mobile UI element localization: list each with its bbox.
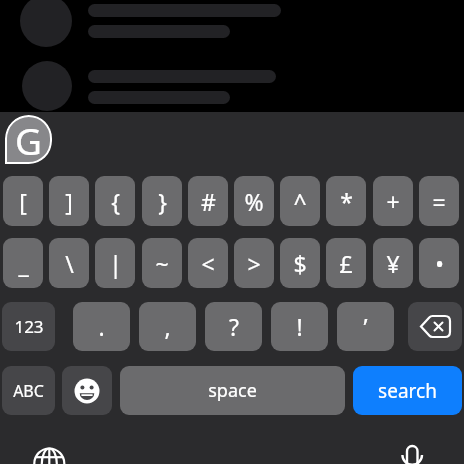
- button[interactable]: ABC: [2, 366, 55, 415]
- staticText: ~: [155, 248, 169, 279]
- button[interactable]: +: [373, 176, 413, 226]
- button[interactable]: space: [120, 366, 345, 415]
- button[interactable]: ]: [49, 176, 89, 226]
- staticText: |: [109, 248, 122, 279]
- button[interactable]: .: [73, 302, 130, 351]
- button[interactable]: ,: [139, 302, 196, 351]
- button[interactable]: [408, 302, 462, 351]
- staticText: _: [18, 248, 29, 279]
- button[interactable]: #: [188, 176, 228, 226]
- staticText: G: [15, 115, 42, 164]
- staticText: ABC: [13, 380, 44, 402]
- button[interactable]: •: [419, 238, 459, 288]
- staticText: $: [293, 248, 307, 279]
- button[interactable]: [33, 446, 66, 464]
- staticText: #: [201, 186, 216, 217]
- button[interactable]: |: [95, 238, 135, 288]
- staticText: <: [201, 248, 215, 279]
- button[interactable]: ¥: [373, 238, 413, 288]
- staticText: ?: [229, 311, 239, 342]
- button[interactable]: 123: [2, 302, 55, 351]
- button[interactable]: =: [419, 176, 459, 226]
- staticText: space: [208, 378, 257, 403]
- staticText: +: [386, 186, 400, 217]
- staticText: >: [247, 248, 261, 279]
- button[interactable]: [: [3, 176, 43, 226]
- staticText: =: [432, 186, 446, 217]
- button[interactable]: ’: [337, 302, 394, 351]
- staticText: %: [244, 186, 264, 217]
- staticText: 123: [14, 315, 44, 338]
- button[interactable]: >: [234, 238, 274, 288]
- button[interactable]: ?: [205, 302, 262, 351]
- button[interactable]: }: [142, 176, 182, 226]
- button[interactable]: £: [326, 238, 366, 288]
- staticText: •: [435, 248, 444, 279]
- staticText: *: [340, 186, 353, 217]
- button[interactable]: [62, 366, 112, 415]
- staticText: .: [98, 311, 105, 342]
- button[interactable]: !: [271, 302, 328, 351]
- staticText: ’: [363, 311, 368, 342]
- button[interactable]: {: [95, 176, 135, 226]
- staticText: ]: [65, 186, 73, 217]
- button[interactable]: ^: [280, 176, 320, 226]
- staticText: !: [296, 311, 303, 342]
- button[interactable]: *: [326, 176, 366, 226]
- staticText: search: [378, 378, 437, 404]
- staticText: ^: [293, 186, 307, 217]
- button[interactable]: $: [280, 238, 320, 288]
- button[interactable]: ~: [142, 238, 182, 288]
- staticText: [: [19, 186, 27, 217]
- button[interactable]: _: [3, 238, 43, 288]
- staticText: ¥: [386, 248, 400, 279]
- button[interactable]: G: [5, 115, 52, 164]
- staticText: £: [339, 248, 353, 279]
- staticText: \: [65, 248, 74, 279]
- button[interactable]: [398, 444, 426, 464]
- staticText: {: [111, 186, 120, 217]
- button[interactable]: <: [188, 238, 228, 288]
- staticText: ,: [164, 311, 171, 342]
- button[interactable]: \: [49, 238, 89, 288]
- staticText: }: [158, 186, 167, 217]
- button[interactable]: search: [353, 366, 462, 415]
- button[interactable]: %: [234, 176, 274, 226]
